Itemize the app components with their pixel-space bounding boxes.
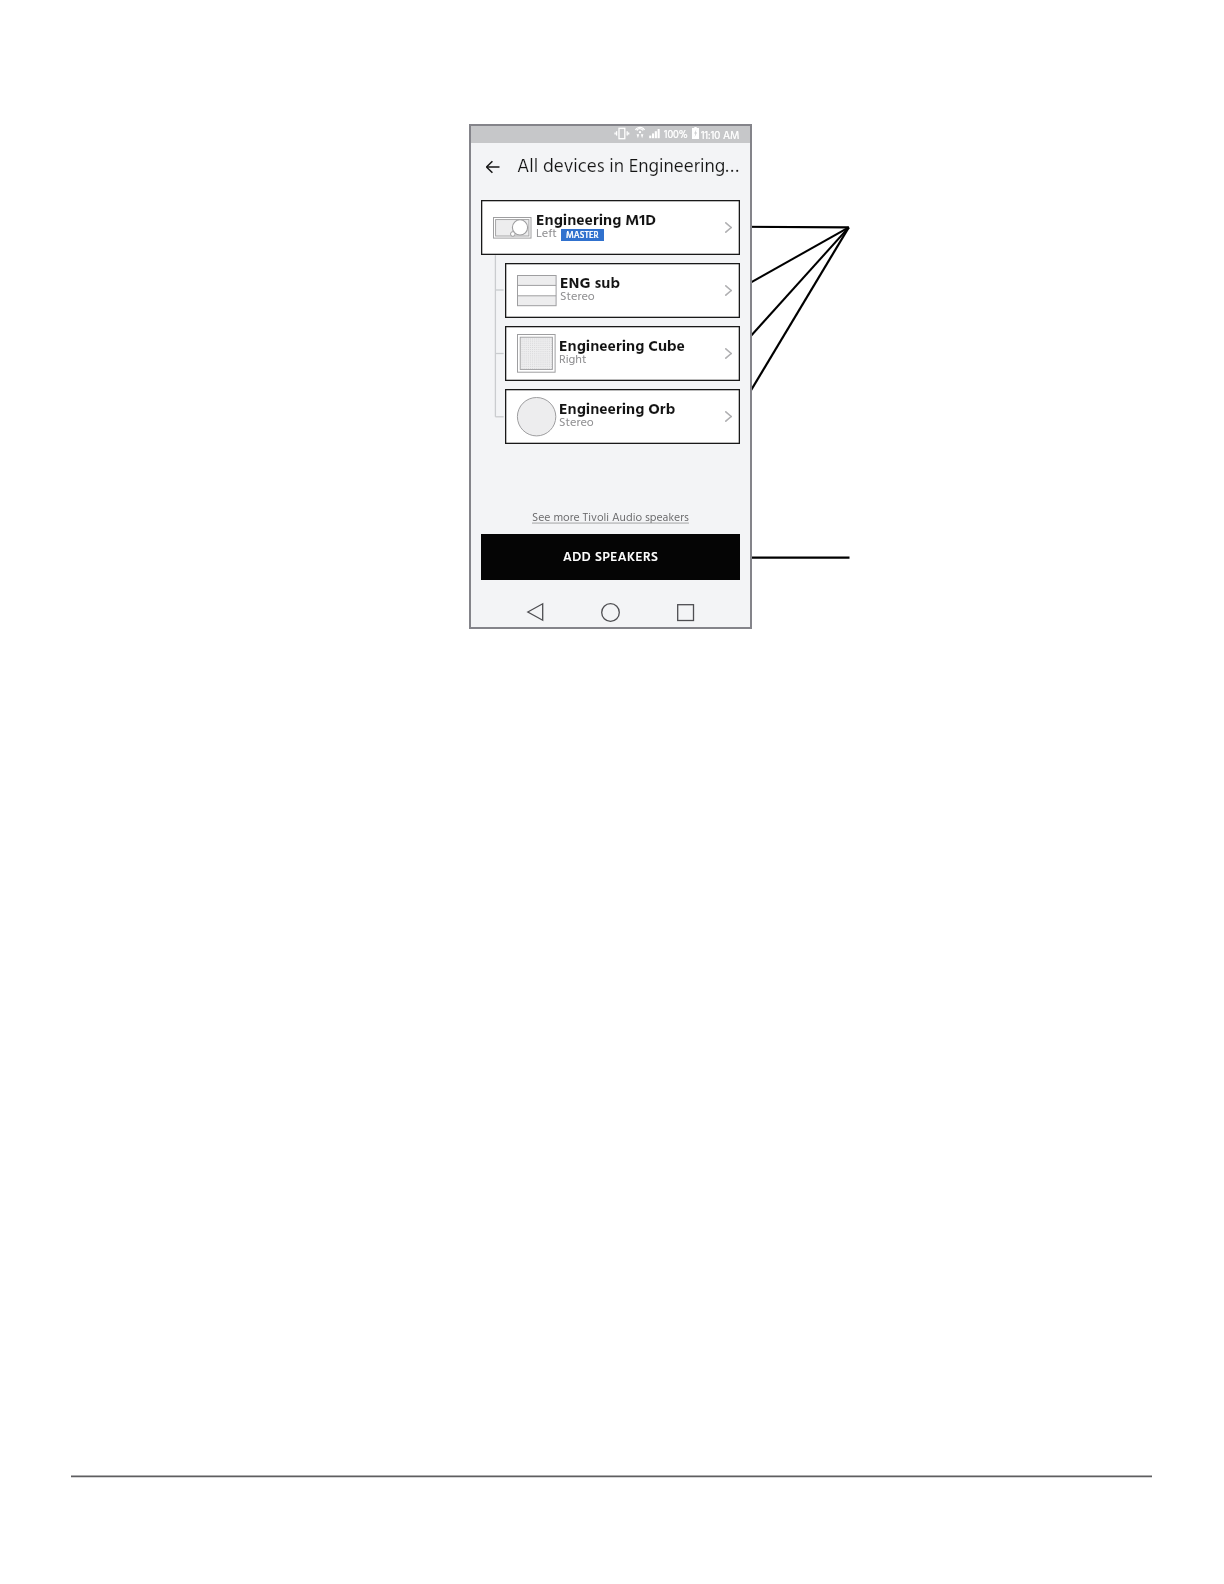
staticText: Engineering M1D [536, 208, 656, 233]
staticText: Stereo [560, 287, 595, 307]
button[interactable]: ENG sub [505, 263, 740, 318]
button[interactable]: Engineering M1D [481, 200, 740, 255]
staticText: Stereo [559, 413, 594, 433]
staticText: Engineering Orb [559, 397, 676, 422]
staticText: ENG sub [560, 271, 620, 296]
staticText: ADD SPEAKERS [563, 547, 659, 568]
staticText: MASTER [566, 229, 599, 241]
staticText: Right [559, 350, 587, 370]
button[interactable]: Engineering Orb [505, 389, 740, 444]
button[interactable]: See more Tivoli Audio speakers [528, 507, 693, 530]
button[interactable]: Back [518, 595, 552, 629]
button[interactable]: Engineering Cube [505, 326, 740, 381]
button[interactable]: ADD SPEAKERS [481, 534, 740, 580]
staticText: Left [536, 224, 557, 244]
button[interactable]: Recents [668, 595, 702, 629]
staticText: Engineering Cube [559, 334, 685, 359]
button[interactable]: Home [593, 595, 627, 629]
staticText: 100% [664, 127, 688, 141]
staticText: All devices in Engineering… [517, 152, 739, 181]
staticText: 11:10 AM [701, 127, 740, 141]
button[interactable]: Back [481, 155, 505, 179]
staticText: See more Tivoli Audio speakers [532, 509, 689, 528]
